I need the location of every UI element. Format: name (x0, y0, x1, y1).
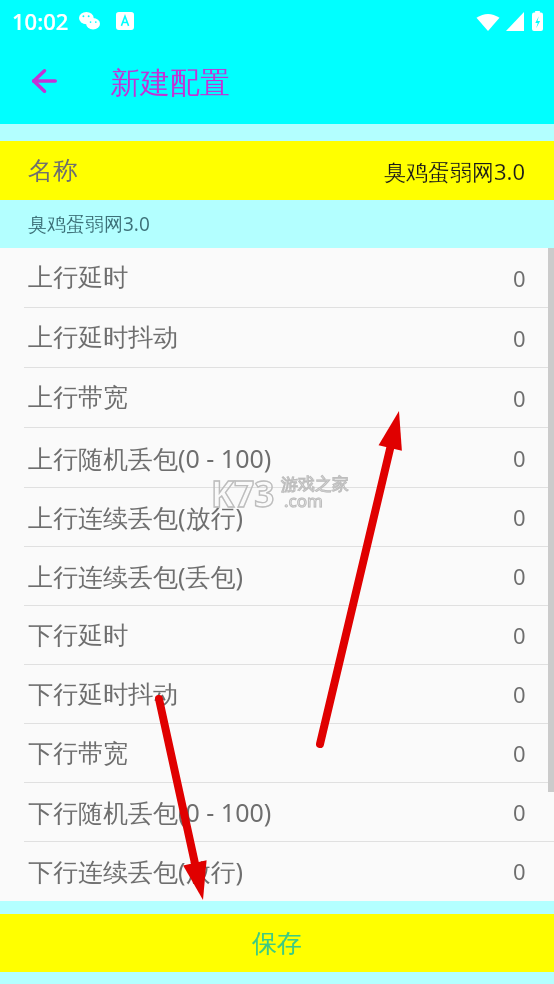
staticText: 10:02 (12, 6, 69, 36)
button[interactable]: 上行延时抖动 (0, 308, 554, 368)
staticText: K73 (211, 470, 275, 518)
other: Wi-Fi (476, 12, 500, 31)
staticText: 上行随机丢包(0 - 100) (28, 441, 272, 475)
staticText: 下行延时抖动 (28, 679, 178, 710)
staticText: 下行随机丢包(0 - 100) (28, 795, 272, 829)
button[interactable]: Back (19, 56, 69, 106)
staticText: 0 (513, 263, 526, 293)
staticText: 0 (513, 323, 526, 353)
staticText: 0 (513, 679, 526, 709)
other: Battery charging (532, 11, 543, 31)
staticText: 保存 (252, 928, 302, 959)
staticText: 名称 (28, 155, 78, 186)
staticText: 0 (513, 383, 526, 413)
staticText: 上行延时抖动 (28, 322, 178, 353)
button[interactable]: 下行随机丢包(0 - 100) (0, 783, 554, 842)
button[interactable]: 上行随机丢包(0 - 100) (0, 428, 554, 488)
staticText: 0 (513, 502, 526, 532)
staticText: 下行带宽 (28, 738, 128, 769)
staticText: 上行连续丢包(丢包) (28, 559, 244, 593)
staticText: 新建配置 (110, 64, 230, 102)
other: WeChat notification (79, 12, 100, 31)
staticText: 下行连续丢包(放行) (28, 854, 244, 888)
button[interactable]: 上行连续丢包(放行) (0, 488, 554, 547)
staticText: 0 (513, 856, 526, 886)
staticText: 0 (513, 443, 526, 473)
button[interactable]: 上行延时 (0, 248, 554, 308)
staticText: 臭鸡蛋弱网3.0 (384, 156, 526, 186)
staticText: 0 (513, 797, 526, 827)
staticText: 臭鸡蛋弱网3.0 (28, 211, 150, 237)
button[interactable]: 下行延时 (0, 606, 554, 665)
other: App notification (116, 12, 134, 30)
button[interactable]: 保存 (0, 914, 554, 972)
staticText: 0 (513, 620, 526, 650)
button[interactable]: 下行延时抖动 (0, 665, 554, 724)
staticText: 上行延时 (28, 262, 128, 293)
button[interactable]: 名称 (0, 141, 554, 200)
button[interactable]: 上行带宽 (0, 368, 554, 428)
other: Mobile signal (506, 12, 524, 31)
staticText: 游戏之家 (281, 474, 349, 495)
button[interactable]: 上行连续丢包(丢包) (0, 547, 554, 606)
button[interactable]: 下行带宽 (0, 724, 554, 783)
staticText: 下行延时 (28, 620, 128, 651)
button[interactable]: 下行连续丢包(放行) (0, 842, 554, 901)
staticText: .com (284, 489, 323, 512)
staticText: 上行连续丢包(放行) (28, 500, 244, 534)
staticText: 0 (513, 738, 526, 768)
staticText: 上行带宽 (28, 382, 128, 413)
staticText: 0 (513, 561, 526, 591)
